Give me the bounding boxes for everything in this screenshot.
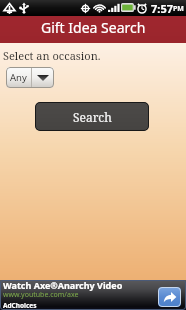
staticText: 7:57 (151, 1, 173, 16)
button[interactable]: Watch Axe®Anarchy Video (0, 280, 186, 310)
staticText: Watch Axe®Anarchy Video (3, 279, 123, 291)
staticText: www.youtube.com/axe (3, 290, 79, 300)
button[interactable]: Share (158, 287, 181, 307)
staticText: Search (73, 109, 112, 125)
staticText: PM (173, 4, 184, 14)
staticText: AdChoices (3, 301, 37, 310)
staticText: Select an occasion. (3, 48, 101, 63)
staticText: Gift Idea Search (41, 18, 146, 37)
staticText: Any (10, 71, 27, 84)
button[interactable]: Any (6, 67, 54, 88)
button[interactable]: Search (35, 102, 149, 131)
